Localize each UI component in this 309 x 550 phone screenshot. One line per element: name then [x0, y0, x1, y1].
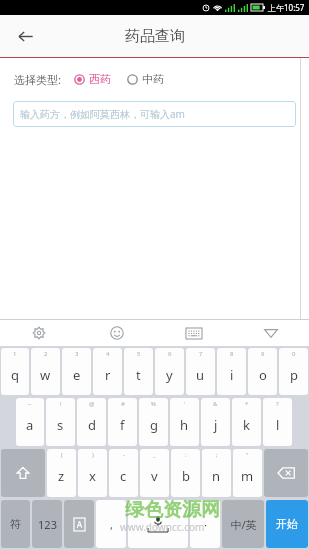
staticText: 8	[230, 350, 234, 358]
button[interactable]: 西药	[73, 70, 112, 88]
button[interactable]: ,	[96, 500, 126, 548]
staticText: a	[26, 416, 34, 434]
staticText: (	[61, 451, 63, 459]
staticText: 6	[168, 350, 172, 358]
button[interactable]: -	[109, 449, 138, 497]
button[interactable]: 3	[62, 348, 91, 395]
staticText: q	[11, 366, 19, 384]
staticText: k	[243, 416, 250, 434]
button[interactable]: ;	[202, 449, 231, 497]
staticText: m	[241, 467, 254, 485]
button[interactable]: 6	[155, 348, 184, 395]
staticText: v	[151, 467, 158, 485]
button[interactable]: 123	[32, 500, 62, 548]
button[interactable]: 输入药方，例如阿莫西林，可输入am	[13, 101, 296, 127]
staticText: 123	[38, 517, 57, 532]
button[interactable]: !	[46, 398, 75, 446]
staticText: #	[121, 400, 125, 408]
button[interactable]: &	[201, 398, 230, 446]
staticText: )	[92, 451, 94, 459]
button[interactable]: %	[139, 398, 168, 446]
button[interactable]: 0	[279, 348, 308, 395]
staticText: 2	[44, 350, 48, 358]
button[interactable]: ~	[16, 398, 44, 446]
button[interactable]: Space / Voice input	[128, 500, 188, 548]
staticText: -	[123, 451, 125, 459]
staticText: '	[184, 400, 186, 408]
staticText: &	[213, 400, 218, 408]
staticText: 1	[13, 350, 17, 358]
button[interactable]: Back	[8, 19, 42, 53]
staticText: 7	[199, 350, 203, 358]
staticText: h	[180, 416, 189, 434]
button[interactable]: 中药	[126, 70, 165, 88]
button[interactable]: Settings	[0, 320, 78, 346]
button[interactable]: #	[108, 398, 137, 446]
staticText: r	[105, 366, 111, 384]
button[interactable]: '	[170, 398, 199, 446]
button[interactable]: 9	[248, 348, 277, 395]
button[interactable]: Input language	[64, 500, 94, 548]
staticText: *	[245, 400, 249, 408]
button[interactable]: 5	[124, 348, 153, 395]
staticText: 上午10:57	[268, 2, 305, 13]
button[interactable]: 4	[93, 348, 122, 395]
button[interactable]: (	[47, 449, 76, 497]
button[interactable]: Shift	[1, 449, 45, 497]
button[interactable]: 7	[186, 348, 215, 395]
button[interactable]: 1	[1, 348, 29, 395]
staticText: 药品查询	[125, 27, 185, 46]
button[interactable]: 中/英	[222, 500, 264, 548]
staticText: i	[230, 366, 234, 384]
staticText: 中药	[142, 72, 164, 86]
staticText: s	[57, 416, 64, 434]
button[interactable]: @	[77, 398, 106, 446]
button[interactable]: 符	[1, 500, 30, 548]
staticText: ,	[110, 517, 113, 532]
staticText: e	[73, 366, 81, 384]
staticText: 3	[75, 350, 79, 358]
button[interactable]: Hide keyboard	[232, 320, 309, 346]
button[interactable]: :	[171, 449, 200, 497]
button[interactable]: Emoji	[78, 320, 155, 346]
button[interactable]: 2	[31, 348, 60, 395]
staticText: l	[276, 416, 280, 434]
staticText: g	[150, 416, 158, 434]
staticText: w	[40, 366, 51, 384]
staticText: 5	[137, 350, 141, 358]
button[interactable]: 开始	[266, 500, 308, 548]
staticText: www.downcc.com	[120, 520, 205, 534]
staticText: 中/英	[230, 517, 257, 532]
button[interactable]: )	[78, 449, 107, 497]
staticText: 输入药方，例如阿莫西林，可输入am	[20, 107, 185, 121]
staticText: d	[88, 416, 96, 434]
staticText: f	[120, 416, 125, 434]
staticText: t	[136, 366, 141, 384]
staticText: 符	[10, 517, 21, 531]
staticText: y	[166, 366, 173, 384]
staticText: x	[89, 467, 96, 485]
staticText: ;	[216, 451, 218, 459]
button[interactable]: *	[232, 398, 261, 446]
button[interactable]: Backspace	[264, 449, 308, 497]
staticText: %	[151, 400, 156, 408]
staticText: n	[212, 467, 221, 485]
button[interactable]: _	[140, 449, 169, 497]
button[interactable]: Keyboard layout	[155, 320, 232, 346]
staticText: _	[153, 451, 156, 459]
staticText: "	[246, 451, 249, 459]
button[interactable]: "	[233, 449, 262, 497]
staticText: b	[182, 467, 190, 485]
staticText: 开始	[276, 517, 298, 531]
staticText: 选择类型:	[14, 72, 61, 87]
button[interactable]: 8	[217, 348, 246, 395]
staticText: 绿色资源网	[125, 498, 220, 522]
staticText: 西药	[89, 72, 111, 86]
button[interactable]: ?	[263, 398, 292, 446]
staticText: 4	[106, 350, 110, 358]
button[interactable]: ·	[190, 500, 220, 548]
staticText: o	[259, 366, 267, 384]
staticText: 0	[292, 350, 296, 358]
staticText: u	[196, 366, 205, 384]
staticText: ~	[28, 400, 32, 408]
